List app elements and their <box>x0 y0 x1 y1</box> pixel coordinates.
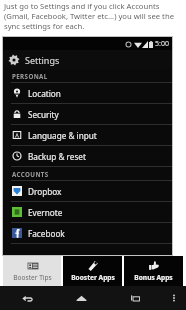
button[interactable]: Language & input <box>3 125 172 145</box>
staticText: Settings <box>25 54 60 66</box>
button[interactable]: Bonus Apps <box>124 256 183 286</box>
button[interactable]: Recent apps <box>108 286 162 310</box>
staticText: ACCOUNTS <box>12 170 49 178</box>
staticText: (Gmail, Facebook, Twitter etc...) you wi… <box>4 11 174 21</box>
staticText: Booster Tips <box>13 273 52 282</box>
staticText: 5:00 <box>155 39 169 49</box>
button[interactable]: Dropbox <box>3 181 172 201</box>
button[interactable]: Booster Tips <box>3 256 61 286</box>
staticText: PERSONAL <box>12 72 48 80</box>
button[interactable]: Security <box>3 104 172 124</box>
staticText: Security <box>28 109 59 120</box>
button[interactable]: Booster Apps <box>63 256 122 286</box>
button[interactable]: More options <box>162 286 186 310</box>
button[interactable]: Location <box>3 83 172 103</box>
staticText: Location <box>28 88 61 99</box>
button[interactable]: Backup & reset <box>3 146 172 166</box>
button[interactable]: Settings <box>3 50 172 69</box>
button[interactable]: Evernote <box>3 202 172 222</box>
staticText: Bonus Apps <box>134 273 173 282</box>
staticText: Facebook <box>28 228 65 239</box>
button[interactable]: Back <box>0 286 54 310</box>
staticText: Booster Apps <box>71 273 115 282</box>
button[interactable]: Facebook <box>3 223 172 243</box>
staticText: Language & input <box>28 130 97 141</box>
staticText: Dropbox <box>28 186 62 197</box>
button[interactable]: Home <box>54 286 108 310</box>
staticText: Just go to Settings and if you click Acc… <box>4 1 160 11</box>
staticText: sync settings for each. <box>4 21 85 31</box>
staticText: Evernote <box>28 207 63 218</box>
staticText: Backup & reset <box>28 151 86 162</box>
